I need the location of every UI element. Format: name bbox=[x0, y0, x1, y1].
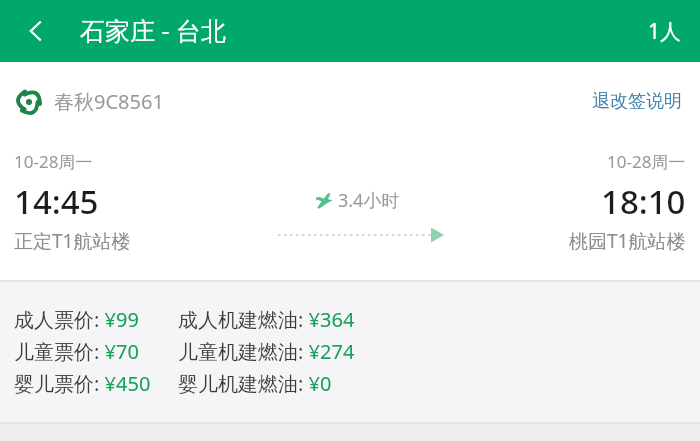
staticText: 儿童票价: ¥70 bbox=[14, 338, 139, 365]
staticText: 3.4小时 bbox=[338, 188, 400, 213]
staticText: 10-28周一 bbox=[607, 150, 686, 173]
button[interactable]: 退改签说明 bbox=[578, 84, 696, 119]
staticText: 婴儿机建燃油: ¥0 bbox=[178, 370, 332, 397]
staticText: 婴儿票价: ¥450 bbox=[14, 370, 151, 397]
staticText: 正定T1航站楼 bbox=[14, 228, 131, 254]
staticText: 儿童机建燃油: ¥274 bbox=[178, 338, 355, 365]
staticText: 成人票价: ¥99 bbox=[14, 306, 139, 333]
staticText: 退改签说明 bbox=[592, 90, 682, 113]
button[interactable]: 1人 bbox=[638, 11, 692, 52]
button[interactable]: Back bbox=[10, 5, 62, 57]
staticText: 成人机建燃油: ¥364 bbox=[178, 306, 355, 333]
staticText: 桃园T1航站楼 bbox=[569, 228, 686, 254]
staticText: 14:45 bbox=[14, 179, 99, 224]
staticText: 石家庄 - 台北 bbox=[80, 13, 227, 47]
staticText: 10-28周一 bbox=[14, 150, 93, 173]
staticText: 春秋9C8561 bbox=[54, 88, 164, 115]
staticText: 1人 bbox=[648, 17, 682, 46]
staticText: 18:10 bbox=[601, 179, 686, 224]
